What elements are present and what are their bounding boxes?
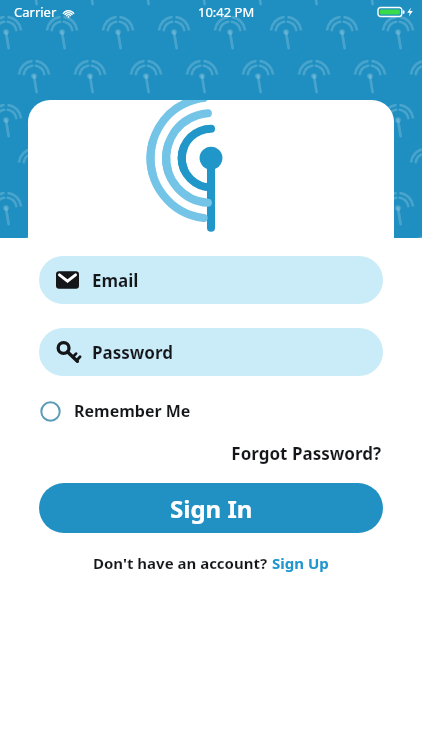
staticText: 10:42 PM [198, 3, 255, 21]
staticText: Email [92, 269, 139, 292]
button[interactable]: Forgot Password? [229, 440, 383, 467]
button[interactable]: Email [39, 256, 383, 304]
button[interactable]: Sign Up [272, 553, 329, 573]
staticText: Sign In [170, 492, 253, 525]
staticText: Remember Me [74, 400, 191, 422]
button[interactable]: Sign In [39, 483, 383, 533]
button[interactable]: Remember Me [39, 397, 192, 425]
staticText: Carrier [14, 3, 57, 21]
staticText: Password [92, 341, 173, 364]
staticText: Don't have an account? [93, 553, 272, 573]
button[interactable]: Password [39, 328, 383, 376]
